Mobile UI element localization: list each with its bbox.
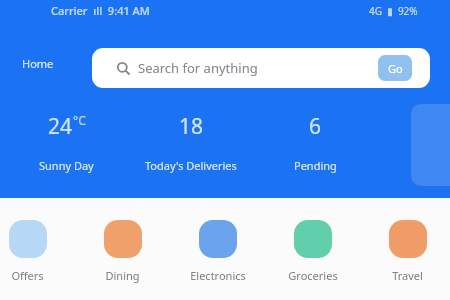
other: Groceries: [294, 220, 332, 258]
other: Dining: [104, 220, 142, 258]
button[interactable]: More stats: [411, 104, 450, 186]
staticText: Today's Deliveries: [145, 158, 237, 173]
staticText: Go: [388, 61, 403, 76]
staticText: Groceries: [288, 268, 338, 283]
staticText: Travel: [392, 268, 423, 283]
staticText: Pending: [294, 158, 337, 173]
button[interactable]: Search for anything: [92, 48, 430, 88]
staticText: Home: [22, 56, 54, 71]
staticText: 4G ▮ 92%: [369, 4, 418, 18]
staticText: °C: [73, 112, 86, 128]
staticText: Carrier ıll 9:41 AM: [51, 3, 150, 18]
button[interactable]: Dining: [75, 220, 170, 283]
button[interactable]: Menu: [22, 54, 54, 72]
button[interactable]: Electronics: [170, 220, 265, 283]
staticText: 18: [179, 112, 204, 141]
other: Offers: [9, 220, 47, 258]
staticText: 6: [309, 112, 322, 141]
staticText: Search for anything: [138, 59, 258, 77]
staticText: Dining: [105, 268, 140, 283]
button[interactable]: Offers: [0, 220, 75, 283]
button[interactable]: 6: [253, 112, 377, 173]
button[interactable]: Go: [378, 55, 412, 81]
staticText: Sunny Day: [39, 158, 94, 173]
other: Travel: [389, 220, 427, 258]
button[interactable]: 24: [4, 112, 129, 173]
other: Electronics: [199, 220, 237, 258]
staticText: Electronics: [190, 268, 246, 283]
button[interactable]: Travel: [360, 220, 450, 283]
button[interactable]: Groceries: [265, 220, 360, 283]
button[interactable]: 18: [129, 112, 253, 173]
staticText: Offers: [11, 268, 44, 283]
staticText: 24: [48, 112, 73, 141]
